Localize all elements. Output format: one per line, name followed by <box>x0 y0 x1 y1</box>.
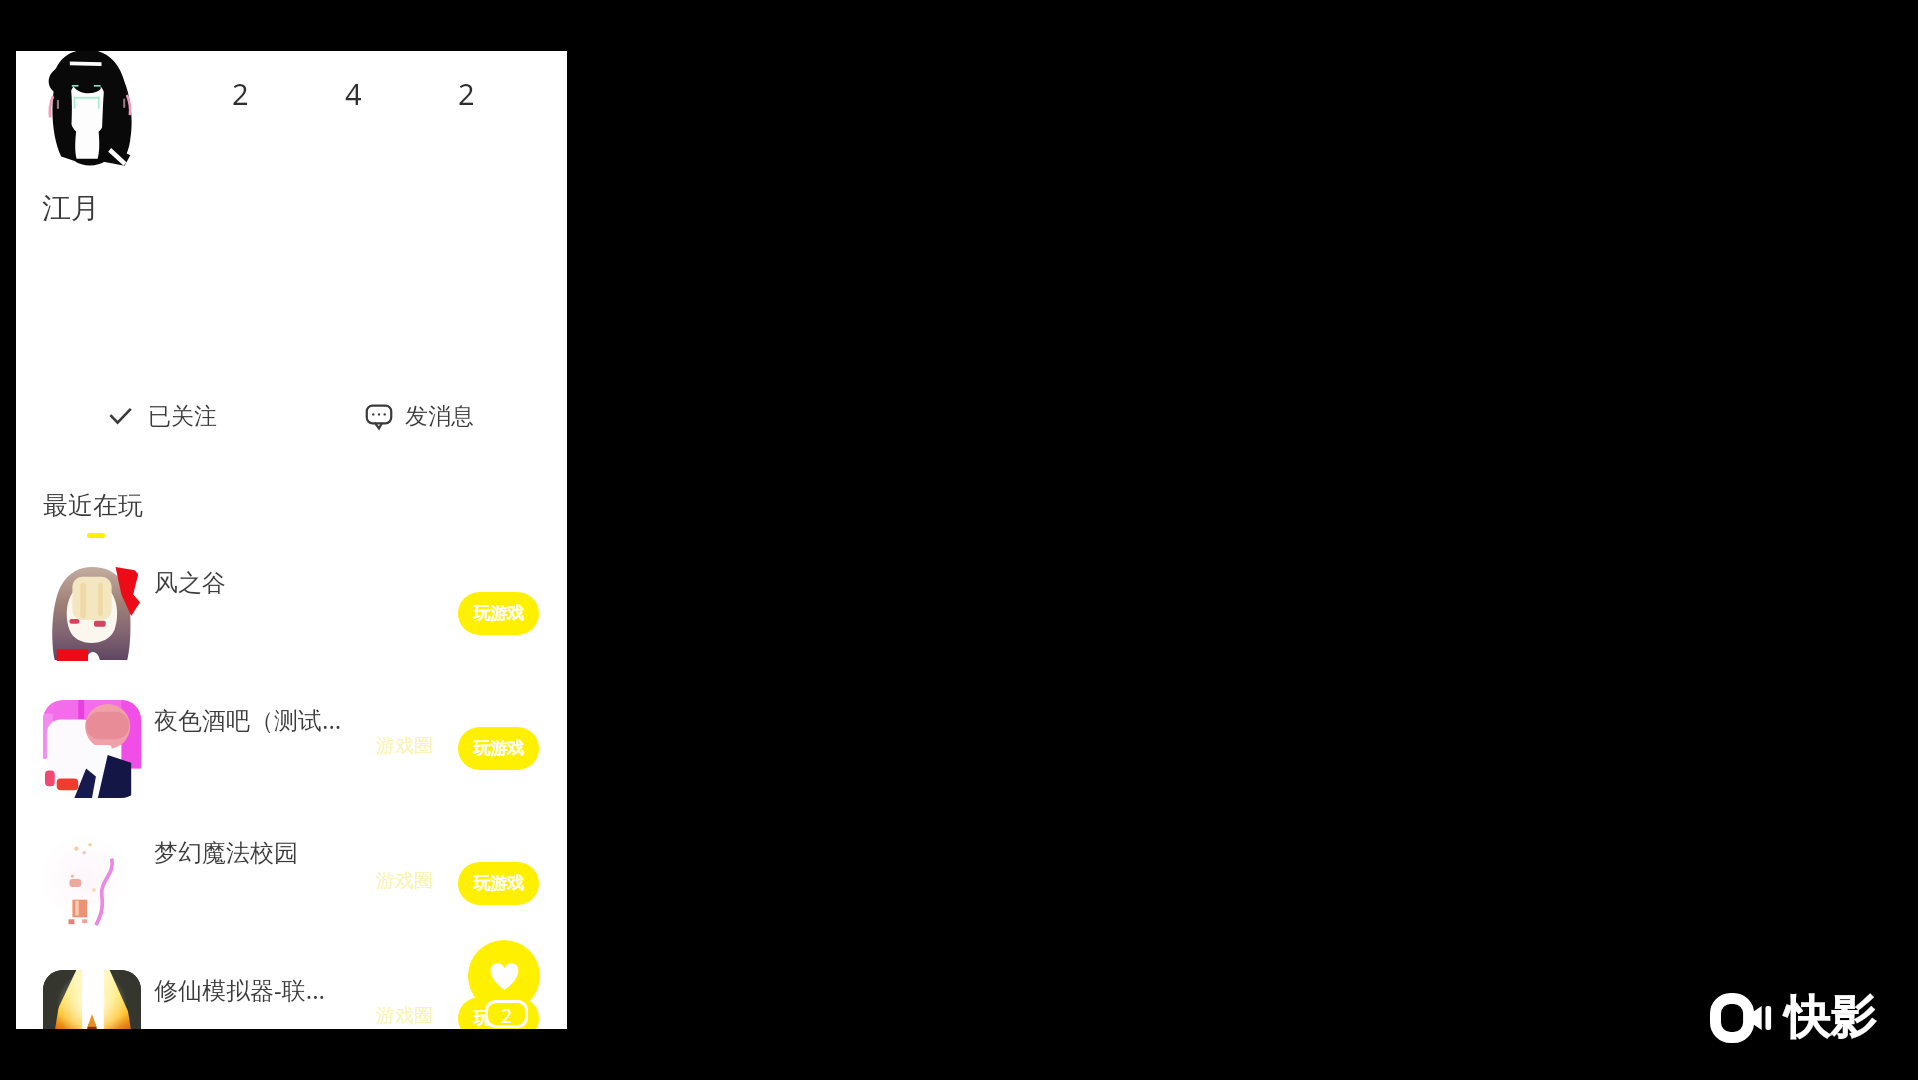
button[interactable]: 修仙模拟器-联... <box>16 953 567 1029</box>
button[interactable]: 发消息 <box>366 391 484 441</box>
staticText: 玩游戏 <box>473 738 524 759</box>
staticText: 已关注 <box>148 402 217 431</box>
staticText: 江月 <box>42 190 100 227</box>
button[interactable]: Profile picture <box>42 51 138 167</box>
staticText: 发消息 <box>405 402 474 431</box>
staticText: 夜色酒吧（测试... <box>154 703 342 736</box>
staticText: 快影 <box>1784 989 1876 1047</box>
button[interactable]: 2 <box>210 71 270 115</box>
staticText: 修仙模拟器-联... <box>154 973 326 1006</box>
staticText: 最近在玩 <box>43 490 143 521</box>
button[interactable]: Favorite <box>468 940 540 1012</box>
button[interactable]: 玩游戏 <box>458 862 539 905</box>
button[interactable]: 夜色酒吧（测试... <box>16 683 567 818</box>
button[interactable]: 2 <box>436 71 496 115</box>
button[interactable]: 玩游戏 <box>458 592 539 635</box>
staticText: 游戏圈 <box>376 734 433 758</box>
button[interactable]: 梦幻魔法校园 <box>16 818 567 953</box>
button[interactable]: 4 <box>323 71 383 115</box>
button[interactable]: 风之谷 <box>16 548 567 683</box>
staticText: 玩游戏 <box>473 873 524 894</box>
staticText: 2 <box>232 74 249 113</box>
staticText: 玩游戏 <box>473 603 524 624</box>
staticText: 2 <box>458 74 475 113</box>
staticText: 风之谷 <box>154 568 226 598</box>
staticText: 4 <box>345 74 362 113</box>
staticText: 玩游戏 <box>473 1008 524 1029</box>
staticText: 游戏圈 <box>376 1004 433 1028</box>
button[interactable]: 已关注 <box>108 391 226 441</box>
button[interactable]: 玩游戏 <box>458 727 539 770</box>
staticText: 2 <box>501 1003 512 1025</box>
button[interactable]: 玩游戏 <box>458 997 539 1029</box>
staticText: 游戏圈 <box>376 869 433 893</box>
staticText: 梦幻魔法校园 <box>154 838 298 868</box>
